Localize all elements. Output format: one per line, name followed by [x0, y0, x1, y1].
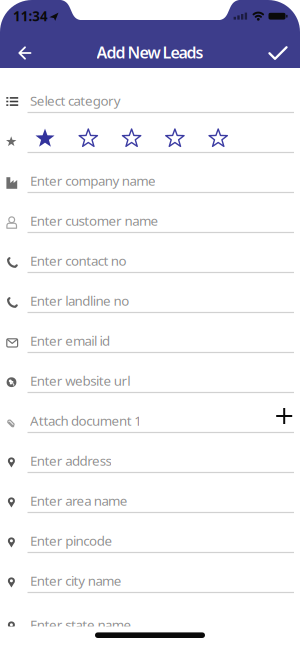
staticText: 11:34	[13, 7, 48, 25]
staticText: Enter pincode	[30, 532, 112, 549]
staticText: Attach document 1	[30, 412, 142, 429]
staticText: Enter landline no	[30, 292, 129, 309]
button[interactable]: Enter company name	[0, 160, 300, 200]
staticText: Enter customer name	[30, 212, 159, 229]
button[interactable]	[78, 128, 99, 149]
button[interactable]	[164, 128, 185, 149]
button[interactable]: Enter pincode	[0, 520, 300, 560]
staticText: Enter address	[30, 452, 111, 469]
button[interactable]	[121, 128, 142, 149]
button[interactable]: Enter address	[0, 440, 300, 480]
button[interactable]: Attach document 1	[0, 400, 300, 440]
staticText: Enter website url	[30, 372, 130, 389]
button[interactable]: Select category	[0, 80, 300, 120]
button[interactable]: Enter state name	[0, 604, 300, 644]
button[interactable]: Enter website url	[0, 360, 300, 400]
button[interactable]	[10, 38, 40, 68]
button[interactable]: Enter customer name	[0, 200, 300, 240]
staticText: Enter area name	[30, 492, 128, 509]
button[interactable]: Enter area name	[0, 480, 300, 520]
button[interactable]	[263, 39, 293, 69]
staticText: Enter state name	[30, 616, 131, 633]
button[interactable]: Enter city name	[0, 560, 300, 600]
staticText: Select category	[30, 92, 121, 109]
button[interactable]: Enter email id	[0, 320, 300, 360]
staticText: Enter email id	[30, 332, 110, 349]
staticText: Add New Leads	[96, 42, 203, 63]
button[interactable]	[208, 128, 229, 149]
button[interactable]	[269, 401, 299, 431]
button[interactable]: Enter landline no	[0, 280, 300, 320]
button[interactable]	[34, 128, 55, 149]
staticText: Enter contact no	[30, 252, 126, 269]
staticText: Enter city name	[30, 572, 122, 589]
staticText: Enter company name	[30, 172, 156, 189]
button[interactable]: Enter contact no	[0, 240, 300, 280]
